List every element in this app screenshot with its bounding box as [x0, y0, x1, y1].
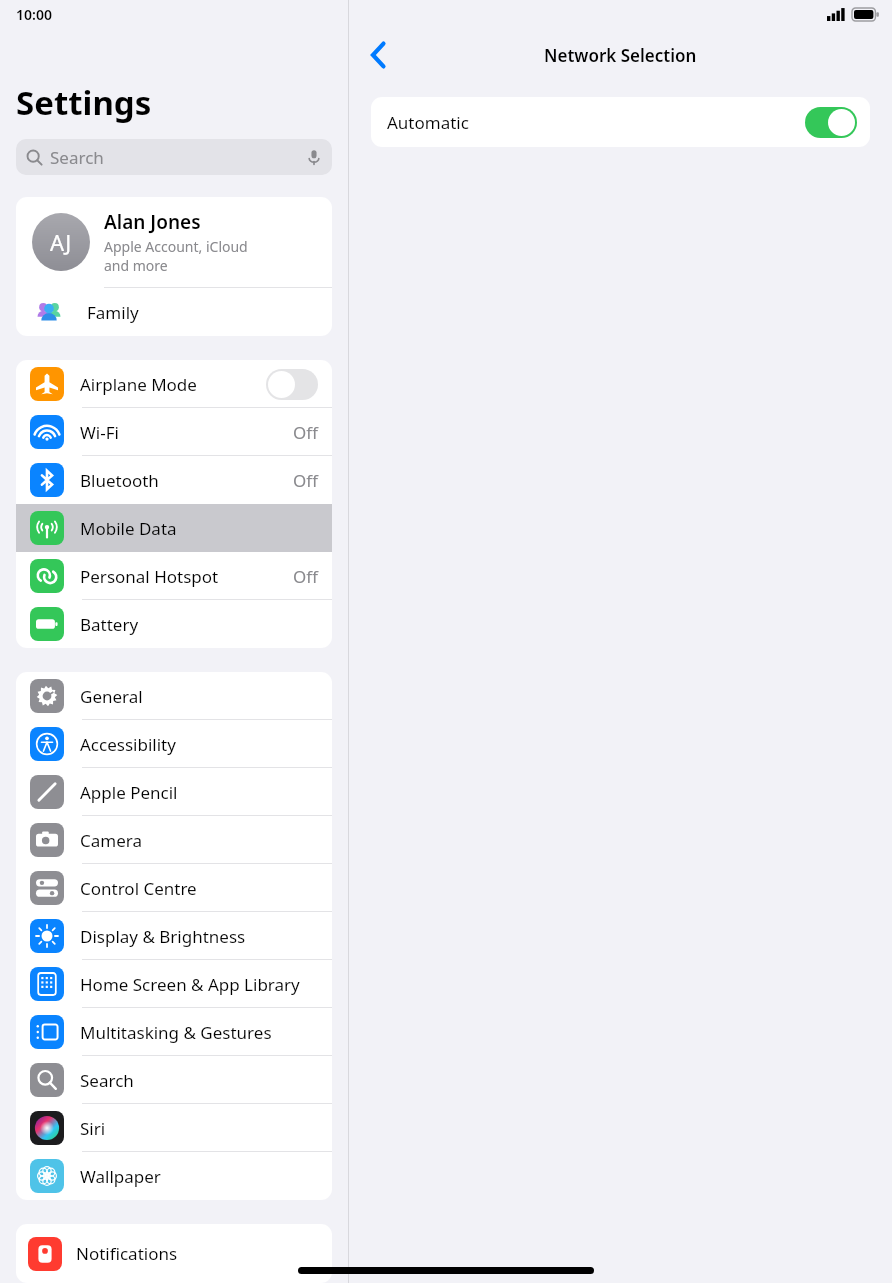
staticText: Settings	[16, 80, 152, 125]
staticText: Multitasking & Gestures	[80, 1021, 318, 1044]
staticText: Alan Jones	[104, 209, 201, 235]
staticText: Apple Pencil	[80, 781, 318, 804]
staticText: Accessibility	[80, 733, 318, 756]
staticText: Search	[80, 1069, 318, 1092]
button[interactable]: General	[16, 672, 332, 720]
button[interactable]: Toggle on	[805, 107, 857, 138]
staticText: Network Selection	[544, 44, 697, 67]
staticText: Home Screen & App Library	[80, 973, 318, 996]
staticText: Camera	[80, 829, 318, 852]
button[interactable]: Multitasking & Gestures	[16, 1008, 332, 1056]
button[interactable]: Search	[16, 139, 332, 175]
button[interactable]: Bluetooth	[16, 456, 332, 504]
staticText: Off	[293, 469, 318, 492]
button[interactable]: Family	[16, 288, 332, 336]
staticText: Battery	[80, 613, 318, 636]
staticText: Display & Brightness	[80, 925, 318, 948]
button[interactable]: AJ	[16, 197, 332, 287]
button[interactable]: Airplane Mode	[16, 360, 332, 408]
staticText: Wi-Fi	[80, 421, 293, 444]
staticText: AJ	[50, 227, 72, 257]
button[interactable]: Personal Hotspot	[16, 552, 332, 600]
staticText: Off	[293, 421, 318, 444]
button[interactable]: Back	[357, 33, 401, 77]
staticText: and more	[104, 256, 168, 275]
button[interactable]: Battery	[16, 600, 332, 648]
staticText: General	[80, 685, 318, 708]
button[interactable]: Wi-Fi	[16, 408, 332, 456]
button[interactable]: Mobile Data	[16, 504, 332, 552]
staticText: Family	[87, 301, 139, 324]
button[interactable]: Automatic	[371, 97, 870, 147]
staticText: Control Centre	[80, 877, 318, 900]
button[interactable]: Display & Brightness	[16, 912, 332, 960]
button[interactable]: Wallpaper	[16, 1152, 332, 1200]
staticText: Notifications	[76, 1242, 178, 1265]
button[interactable]: Toggle off	[266, 369, 318, 400]
button[interactable]: Search	[16, 1056, 332, 1104]
staticText: Search	[50, 146, 306, 169]
button[interactable]: Control Centre	[16, 864, 332, 912]
button[interactable]: Accessibility	[16, 720, 332, 768]
staticText: Siri	[80, 1117, 318, 1140]
button[interactable]: Siri	[16, 1104, 332, 1152]
staticText: Automatic	[387, 111, 469, 134]
staticText: Apple Account, iCloud	[104, 237, 248, 256]
staticText: Bluetooth	[80, 469, 293, 492]
button[interactable]: Camera	[16, 816, 332, 864]
staticText: 10:00	[16, 5, 52, 24]
staticText: Mobile Data	[80, 517, 318, 540]
staticText: Off	[293, 565, 318, 588]
button[interactable]: Apple Pencil	[16, 768, 332, 816]
staticText: Personal Hotspot	[80, 565, 293, 588]
staticText: Airplane Mode	[80, 373, 266, 396]
staticText: Wallpaper	[80, 1165, 318, 1188]
button[interactable]: Notifications	[16, 1224, 332, 1283]
button[interactable]: Home Screen & App Library	[16, 960, 332, 1008]
